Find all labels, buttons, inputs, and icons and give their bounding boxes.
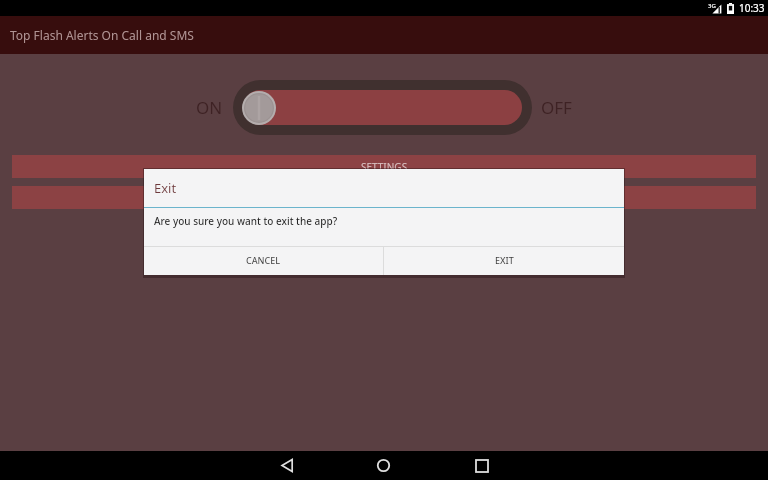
staticText: 3G <box>708 2 716 10</box>
staticText: Top Flash Alerts On Call and SMS <box>10 27 194 43</box>
button[interactable]: SETTINGS <box>12 155 756 178</box>
button[interactable]: Recent apps <box>467 451 496 480</box>
other: Battery <box>727 3 734 14</box>
staticText: OFF <box>541 96 572 119</box>
other: Mobile signal 3G <box>708 2 722 14</box>
staticText: SETTINGS <box>361 160 408 174</box>
button[interactable]: Flash alerts on/off switch <box>233 80 532 135</box>
button[interactable]: Top Flash Alerts On Call and SMS <box>0 16 768 54</box>
button[interactable]: EXIT <box>384 247 624 275</box>
button[interactable]: More options <box>12 186 756 209</box>
staticText: Exit <box>154 179 177 197</box>
staticText: CANCEL <box>246 254 281 266</box>
staticText: ON <box>196 96 223 119</box>
staticText: 10:33 <box>739 1 765 15</box>
staticText: Are you sure you want to exit the app? <box>154 214 338 228</box>
button[interactable]: CANCEL <box>144 247 383 275</box>
button[interactable]: Back <box>273 451 302 480</box>
staticText: EXIT <box>495 254 514 266</box>
button[interactable]: Home <box>369 451 398 480</box>
